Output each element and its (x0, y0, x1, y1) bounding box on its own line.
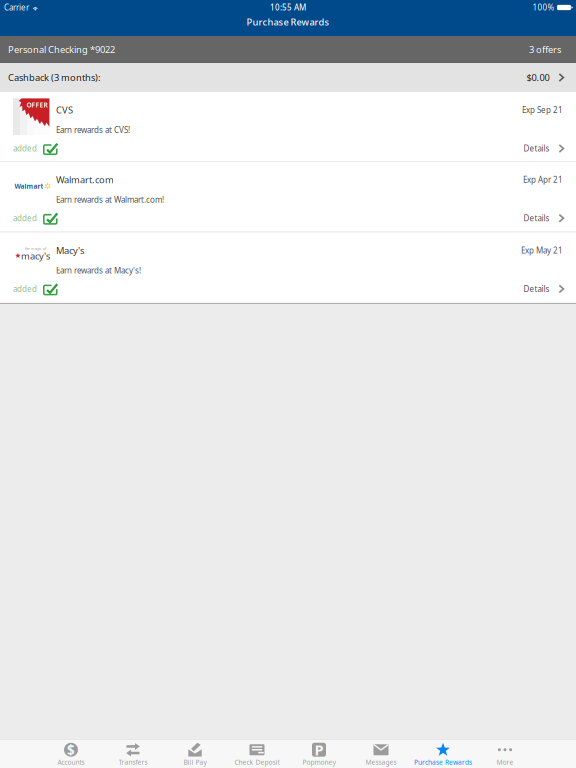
staticText: Popmoney (302, 758, 335, 767)
button[interactable]: Bill Pay (164, 739, 226, 768)
button[interactable]: $ (40, 739, 102, 768)
staticText: Cashback (3 months): (8, 71, 101, 84)
staticText: 10:55 AM (270, 2, 306, 13)
staticText: Carrier (4, 2, 29, 13)
staticText: Exp Apr 21 (523, 174, 563, 185)
staticText: Transfers (118, 758, 147, 767)
staticText: 100% (533, 2, 555, 13)
staticText: Exp May 21 (521, 245, 563, 256)
staticText: Check Deposit (234, 758, 279, 767)
staticText: Personal Checking *9022 (8, 43, 115, 56)
staticText: Details (523, 284, 549, 294)
staticText: Bill Pay (183, 758, 206, 767)
staticText: P (314, 740, 323, 759)
staticText: macy's (21, 250, 50, 262)
staticText: added (13, 143, 37, 154)
staticText: $0.00 (526, 71, 549, 84)
staticText: Purchase Rewards (246, 16, 329, 28)
staticText: Earn rewards at Walmart.com! (56, 194, 164, 205)
button[interactable]: Messages (350, 739, 412, 768)
staticText: Details (523, 213, 549, 223)
staticText: Walmart.com (56, 173, 114, 186)
staticText: Details (523, 143, 549, 154)
staticText: Earn rewards at Macy's! (56, 265, 141, 276)
staticText: added (13, 213, 37, 223)
staticText: OFFER (26, 100, 47, 109)
staticText: Macy's (56, 244, 84, 257)
button[interactable]: the magic of (0, 232, 576, 303)
button[interactable]: Walmart (0, 162, 576, 232)
staticText: added (13, 284, 37, 294)
staticText: the magic of (25, 246, 46, 251)
staticText: More (496, 758, 513, 767)
staticText: Walmart (14, 182, 43, 191)
button[interactable]: Cashback (3 months): (0, 63, 576, 92)
staticText: $ (67, 741, 75, 759)
button[interactable]: Transfers (102, 739, 164, 768)
staticText: Messages (365, 758, 396, 767)
staticText: CVS (56, 104, 73, 116)
button[interactable]: P (288, 739, 350, 768)
staticText: 3 offers (529, 43, 561, 56)
button[interactable]: Check Deposit (226, 739, 288, 768)
staticText: Exp Sep 21 (522, 105, 563, 115)
staticText: Purchase Rewards (414, 758, 472, 767)
button[interactable]: OFFER (0, 92, 576, 161)
button[interactable]: Purchase Rewards (412, 739, 474, 768)
staticText: Earn rewards at CVS! (56, 125, 130, 135)
button[interactable]: More (474, 739, 536, 768)
staticText: Accounts (57, 758, 84, 767)
